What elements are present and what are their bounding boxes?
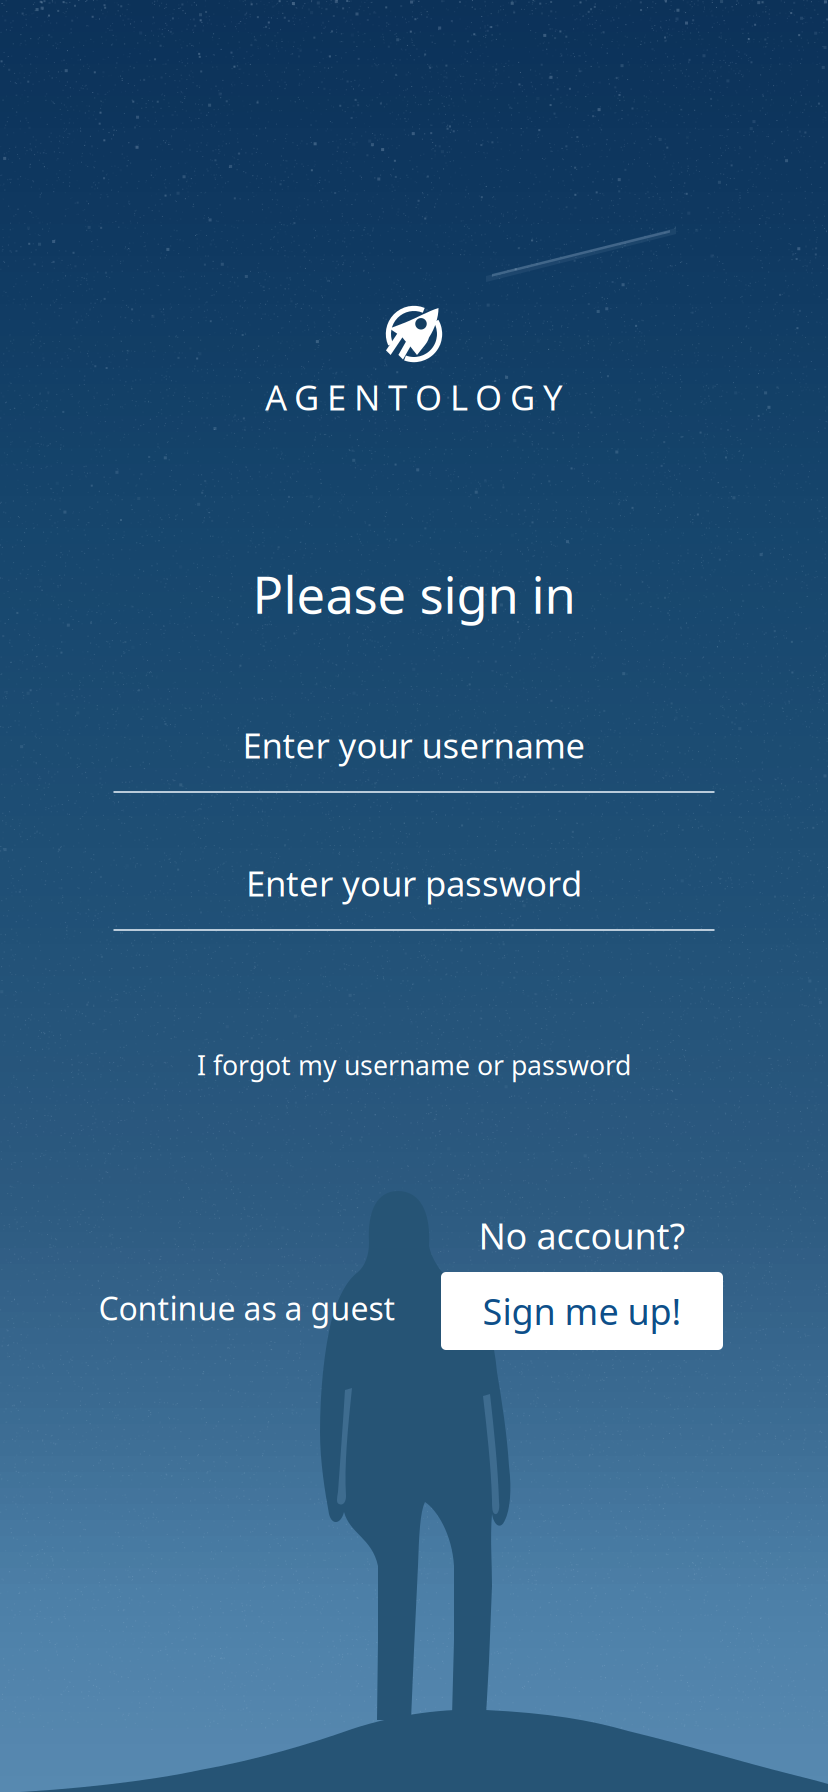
staticText: Sign me up!	[482, 1287, 681, 1335]
staticText: No account?	[478, 1212, 685, 1259]
staticText: Please sign in	[252, 560, 575, 628]
staticText: Continue as a guest	[98, 1287, 395, 1329]
button[interactable]: I forgot my username or password	[113, 1039, 714, 1091]
staticText: Enter your username	[242, 722, 585, 768]
staticText: I forgot my username or password	[197, 1047, 631, 1083]
button[interactable]: Sign me up!	[441, 1272, 723, 1350]
staticText: Enter your password	[246, 860, 582, 906]
button[interactable]: Continue as a guest	[87, 1269, 407, 1347]
button[interactable]: Enter your password	[113, 837, 714, 931]
staticText: AGENTOLOGY	[265, 374, 563, 420]
button[interactable]: Enter your username	[113, 699, 714, 793]
